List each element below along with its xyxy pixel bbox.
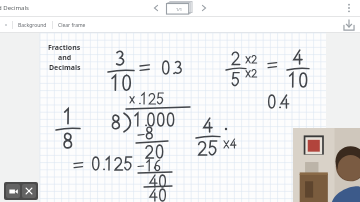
button[interactable]: Background: [13, 20, 52, 31]
button[interactable]: Pages: [165, 0, 195, 16]
staticText: and: [58, 53, 72, 63]
staticText: Clear frame: [58, 22, 86, 29]
button[interactable]: Fractions: [40, 33, 326, 202]
staticText: Decimals: [49, 63, 81, 73]
button[interactable]: Camera: [6, 184, 20, 198]
button[interactable]: Clear frame: [53, 20, 91, 31]
button[interactable]: Previous page: [149, 1, 163, 15]
staticText: Background: [18, 22, 47, 29]
staticText: 1/1: [176, 7, 183, 12]
button[interactable]: Next page: [197, 1, 211, 15]
staticText: Fractions: [48, 43, 81, 53]
button[interactable]: Close: [22, 184, 36, 198]
button[interactable]: Presenter video: [293, 128, 360, 202]
button[interactable]: More options: [340, 0, 358, 16]
button[interactable]: Export: [341, 17, 357, 32]
button[interactable]: Undo: [0, 19, 12, 31]
staticText: d Decimals: [0, 4, 29, 12]
